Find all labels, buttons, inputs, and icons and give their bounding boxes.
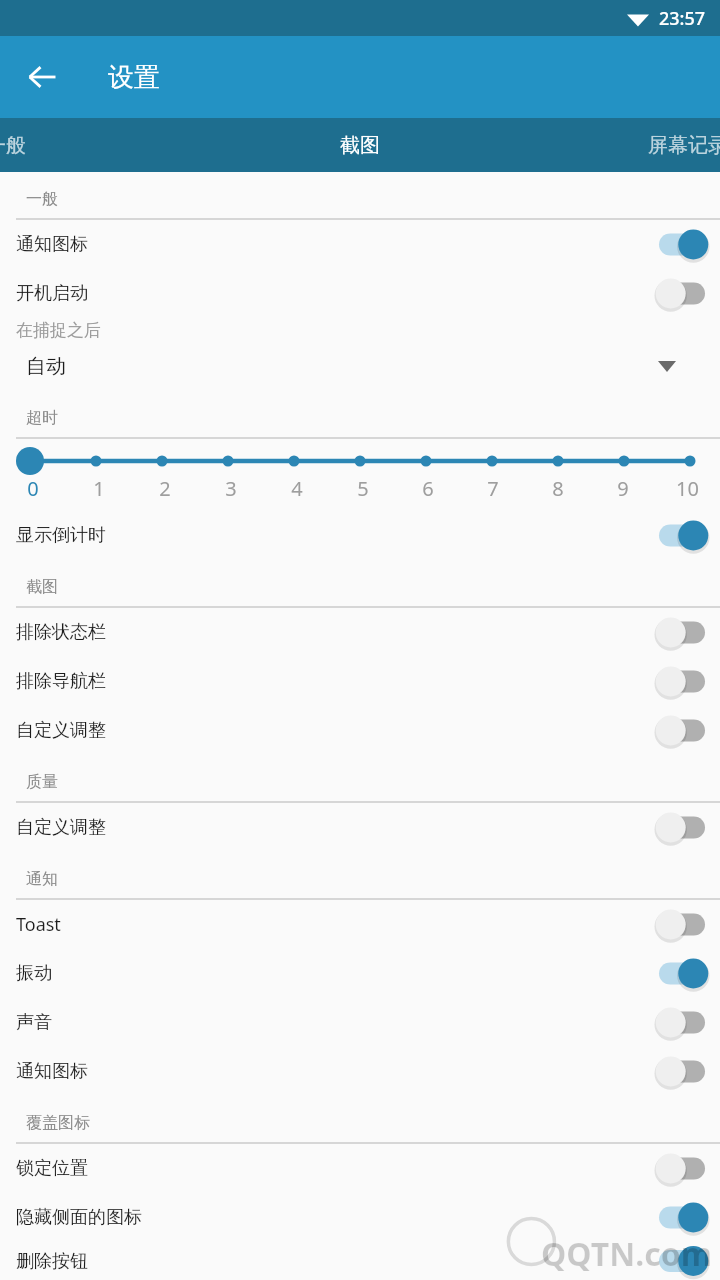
button[interactable]: 在捕捉之后 [0, 318, 720, 391]
button[interactable]: 振动 [0, 949, 720, 998]
other: Off [650, 269, 714, 318]
staticText: QQTN.com [541, 1232, 712, 1276]
other: On [650, 220, 714, 269]
staticText: 自动 [26, 354, 658, 379]
staticText: 自定义调整 [16, 719, 650, 742]
staticText: 超时 [26, 408, 58, 428]
other: Off [650, 1047, 714, 1096]
staticText: 设置 [108, 61, 160, 94]
other: On [650, 949, 714, 998]
staticText: 8 [552, 475, 564, 502]
button[interactable]: 通知图标 [0, 1047, 720, 1096]
button[interactable]: Toast [0, 900, 720, 949]
staticText: 23:57 [659, 6, 706, 31]
other: On [650, 1242, 714, 1280]
button[interactable]: 自定义调整 [0, 803, 720, 852]
staticText: 3 [225, 475, 237, 502]
staticText: 排除导航栏 [16, 670, 650, 693]
staticText: 0 [27, 475, 39, 502]
other: Off [650, 706, 714, 755]
staticText: 屏幕记录 [648, 133, 720, 158]
other: On [650, 511, 714, 560]
staticText: 2 [159, 475, 171, 502]
button[interactable]: Back [16, 51, 68, 103]
staticText: 一般 [26, 189, 58, 209]
staticText: 6 [422, 475, 434, 502]
staticText: 截图 [26, 577, 58, 597]
button[interactable]: 开机启动 [0, 269, 720, 318]
staticText: 覆盖图标 [26, 1113, 90, 1133]
button[interactable]: 截图 [240, 118, 480, 172]
staticText: 9 [617, 475, 629, 502]
staticText: 通知图标 [16, 1060, 650, 1083]
staticText: 1 [93, 475, 105, 502]
other: On [650, 1193, 714, 1242]
staticText: Toast [16, 912, 650, 937]
staticText: 5 [357, 475, 369, 502]
staticText: 声音 [16, 1011, 650, 1034]
button[interactable]: 通知图标 [0, 220, 720, 269]
staticText: 在捕捉之后 [16, 320, 101, 341]
other: Off [650, 657, 714, 706]
staticText: 排除状态栏 [16, 621, 650, 644]
other: Off [650, 998, 714, 1047]
other: Off [650, 900, 714, 949]
staticText: 通知图标 [16, 233, 650, 256]
staticText: 显示倒计时 [16, 524, 650, 547]
button[interactable]: 排除状态栏 [0, 608, 720, 657]
button[interactable]: 锁定位置 [0, 1144, 720, 1193]
staticText: 隐藏侧面的图标 [16, 1206, 650, 1229]
button[interactable]: 自定义调整 [0, 706, 720, 755]
staticText: 10 [676, 475, 699, 502]
other: Off [650, 1144, 714, 1193]
button[interactable]: 声音 [0, 998, 720, 1047]
button[interactable]: 删除按钮 [0, 1242, 720, 1280]
staticText: 4 [291, 475, 303, 502]
staticText: 自定义调整 [16, 816, 650, 839]
staticText: 振动 [16, 962, 650, 985]
button[interactable]: 显示倒计时 [0, 511, 720, 560]
other: Off [650, 803, 714, 852]
staticText: 一般 [0, 133, 26, 158]
staticText: 删除按钮 [16, 1250, 650, 1273]
button[interactable]: 屏幕记录 [480, 118, 720, 172]
staticText: 7 [487, 475, 499, 502]
button[interactable]: 一般 [0, 118, 240, 172]
button[interactable]: 隐藏侧面的图标 [0, 1193, 720, 1242]
other: Off [650, 608, 714, 657]
staticText: 开机启动 [16, 282, 650, 305]
staticText: 截图 [340, 133, 380, 158]
staticText: 锁定位置 [16, 1157, 650, 1180]
staticText: 质量 [26, 772, 58, 792]
button[interactable]: 排除导航栏 [0, 657, 720, 706]
staticText: 通知 [26, 869, 58, 889]
